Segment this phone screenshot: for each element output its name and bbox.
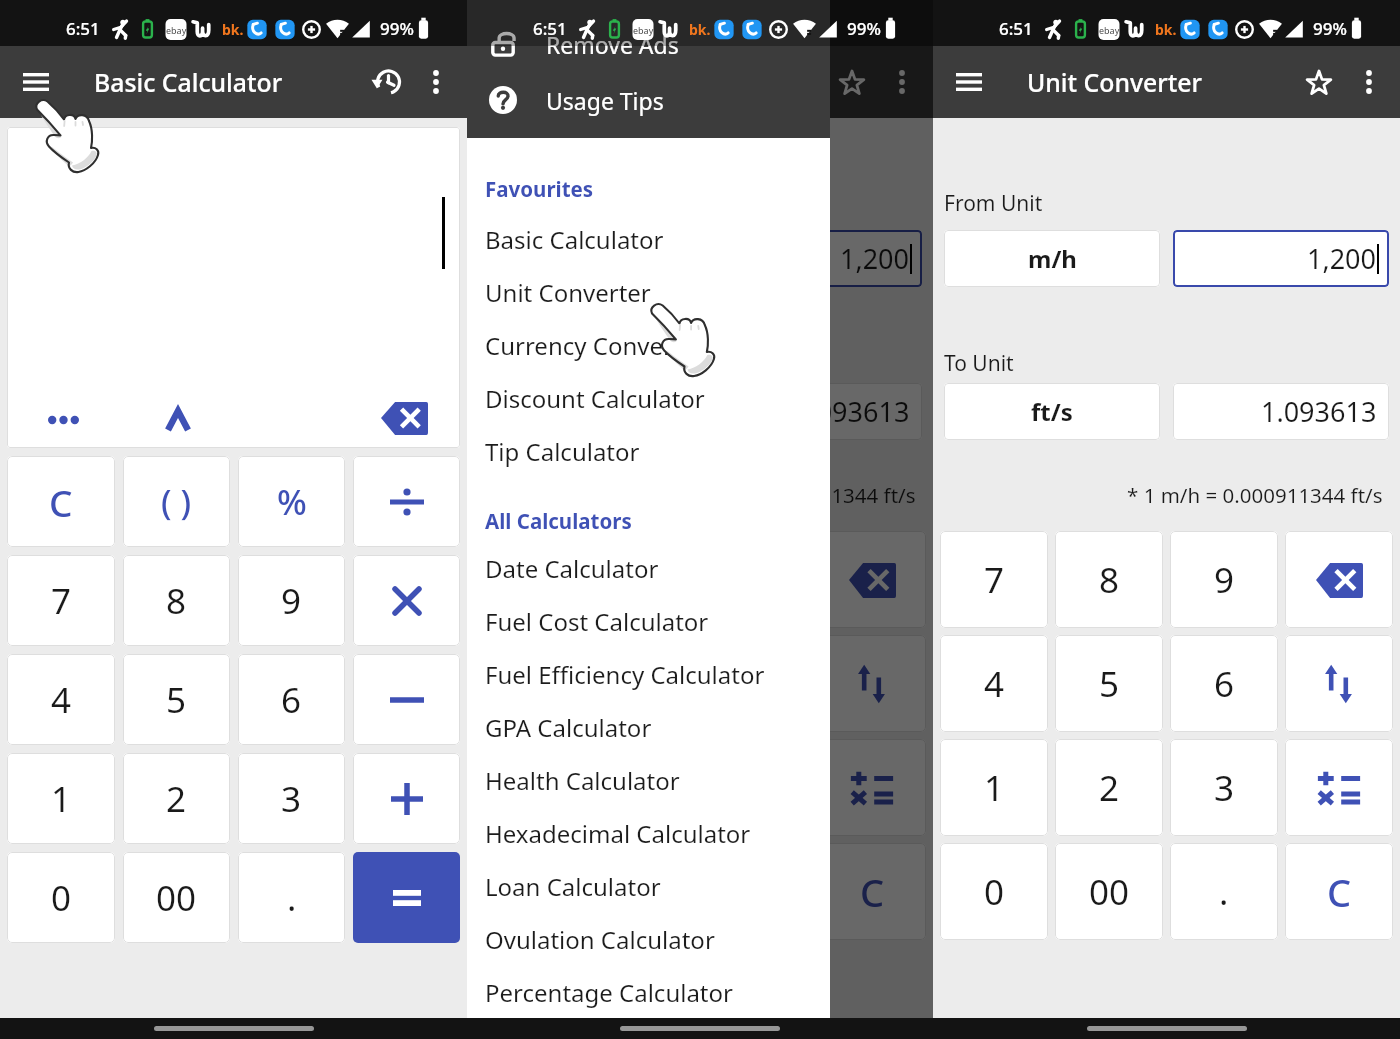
button[interactable]: 5 — [1055, 635, 1163, 732]
button[interactable]: 2 — [588, 739, 696, 836]
button[interactable]: . — [238, 852, 345, 943]
button[interactable]: ( ) — [123, 456, 230, 547]
button[interactable]: 1 — [7, 753, 115, 844]
button[interactable]: 3 — [238, 753, 345, 844]
button[interactable]: Percentage Calculator — [467, 966, 830, 1019]
button[interactable]: Date Calculator — [467, 542, 830, 595]
button[interactable]: Fuel Cost Calculator — [467, 595, 830, 648]
button[interactable]: Usage Tips — [467, 74, 830, 126]
button[interactable]: Swap units — [1285, 635, 1393, 732]
button[interactable]: Add — [353, 753, 460, 844]
button[interactable]: 1,200 — [1173, 230, 1389, 287]
staticText: 00 — [156, 874, 197, 922]
button[interactable]: 5 — [123, 654, 230, 745]
button[interactable]: Open navigation drawer — [945, 46, 993, 118]
button[interactable]: Fuel Efficiency Calculator — [467, 648, 830, 701]
button[interactable]: Multiply — [353, 555, 460, 646]
button[interactable]: 1.093613 — [1173, 383, 1389, 440]
button[interactable]: 6 — [1170, 635, 1278, 732]
button[interactable]: Currency Converter — [467, 319, 830, 372]
button[interactable]: Loan Calculator — [467, 860, 830, 913]
button[interactable]: 0 — [474, 843, 581, 940]
button[interactable]: 00 — [1055, 843, 1163, 940]
button[interactable]: GPA Calculator — [467, 701, 830, 754]
button[interactable]: More options — [879, 46, 925, 118]
button[interactable]: Swap units — [818, 635, 926, 732]
button[interactable]: Remove Ads — [467, 18, 830, 70]
button[interactable]: 2 — [1055, 739, 1163, 836]
button[interactable]: Open navigation drawer — [12, 46, 60, 118]
staticText: bk. — [689, 20, 711, 39]
button[interactable]: % — [238, 456, 345, 547]
button[interactable]: 5 — [588, 635, 696, 732]
button[interactable]: 00 — [588, 843, 696, 940]
button[interactable]: 0 — [7, 852, 115, 943]
button[interactable]: 8 — [588, 531, 696, 628]
button[interactable]: ft/s — [478, 383, 693, 440]
button[interactable]: Math operations — [818, 739, 926, 836]
button[interactable]: 7 — [7, 555, 115, 646]
button[interactable]: Open navigation drawer — [479, 46, 527, 118]
button[interactable]: Power — [154, 394, 202, 444]
button[interactable]: 2 — [123, 753, 230, 844]
staticText: 6 — [1214, 660, 1235, 708]
button[interactable]: 3 — [703, 739, 811, 836]
button[interactable]: Divide — [353, 456, 460, 547]
button[interactable]: Add to favourites — [1292, 46, 1346, 118]
button[interactable]: 1 — [940, 739, 1048, 836]
button[interactable]: 4 — [7, 654, 115, 745]
button[interactable]: 7 — [940, 531, 1048, 628]
staticText: 99% — [1313, 17, 1347, 40]
button[interactable]: 1,200 — [706, 230, 922, 287]
button[interactable]: 9 — [1170, 531, 1278, 628]
button[interactable]: Hexadecimal Calculator — [467, 807, 830, 860]
button[interactable]: C — [1285, 843, 1393, 940]
button[interactable]: 9 — [703, 531, 811, 628]
button[interactable]: 7 — [474, 531, 581, 628]
button[interactable]: Backspace — [381, 401, 428, 435]
button[interactable]: More options — [1346, 46, 1392, 118]
staticText: 0 — [51, 874, 72, 922]
button[interactable]: Backspace — [1316, 562, 1363, 598]
button[interactable]: 0 — [940, 843, 1048, 940]
button[interactable]: Health Calculator — [467, 754, 830, 807]
button[interactable]: 1 — [474, 739, 581, 836]
button[interactable]: 3 — [1170, 739, 1278, 836]
button[interactable]: More functions — [41, 405, 85, 435]
button[interactable]: Math operations — [1285, 739, 1393, 836]
button[interactable]: More options — [413, 46, 459, 118]
staticText: bk. — [222, 20, 244, 39]
button[interactable]: Discount Calculator — [467, 372, 830, 425]
button[interactable]: C — [818, 843, 926, 940]
button[interactable]: m/h — [944, 230, 1160, 287]
button[interactable]: 8 — [123, 555, 230, 646]
button[interactable]: 6 — [703, 635, 811, 732]
button[interactable]: Unit Converter — [467, 266, 830, 319]
button[interactable]: 00 — [123, 852, 230, 943]
button[interactable]: m/h — [478, 230, 693, 287]
button[interactable]: Ovulation Calculator — [467, 913, 830, 966]
staticText: 3 — [281, 775, 302, 823]
button[interactable]: 4 — [940, 635, 1048, 732]
button[interactable]: 6 — [238, 654, 345, 745]
button[interactable]: . — [1170, 843, 1278, 940]
button[interactable]: ft/s — [944, 383, 1160, 440]
button[interactable]: Backspace — [818, 531, 926, 628]
button[interactable]: 8 — [1055, 531, 1163, 628]
button[interactable]: Backspace — [849, 562, 896, 598]
staticText: . — [1219, 868, 1229, 916]
button[interactable]: Backspace — [1285, 531, 1393, 628]
button[interactable]: Equals — [353, 852, 460, 943]
button[interactable]: Subtract — [353, 654, 460, 745]
button[interactable]: 4 — [474, 635, 581, 732]
button[interactable]: C — [7, 456, 115, 547]
button[interactable]: 1.093613 — [706, 383, 922, 440]
button[interactable]: 9 — [238, 555, 345, 646]
button[interactable]: Add to favourites — [825, 46, 879, 118]
button[interactable]: Tip Calculator — [467, 425, 830, 478]
button[interactable]: Basic Calculator — [467, 213, 830, 266]
staticText: C — [860, 866, 885, 918]
button[interactable]: History — [359, 46, 413, 118]
button[interactable]: . — [703, 843, 811, 940]
